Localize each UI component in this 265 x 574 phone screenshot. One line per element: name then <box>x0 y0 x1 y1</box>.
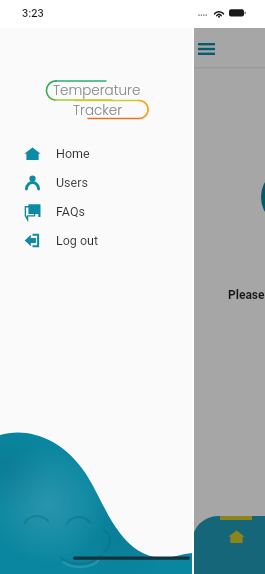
staticText: Temperature <box>53 81 141 100</box>
staticText: Users <box>56 175 88 190</box>
staticText: 3:23 <box>22 7 44 20</box>
staticText: FAQs <box>56 204 86 219</box>
staticText: Home <box>56 146 90 161</box>
button[interactable]: Home <box>220 516 252 574</box>
staticText: Please tap to start <box>228 288 265 302</box>
button[interactable]: Open navigation menu <box>194 33 222 65</box>
button[interactable]: Home <box>0 139 192 168</box>
button[interactable]: FAQs <box>0 197 192 226</box>
staticText: Log out <box>56 233 99 248</box>
button[interactable]: Users <box>0 168 192 197</box>
staticText: Tracker <box>73 101 123 120</box>
button[interactable]: Log out <box>0 226 192 255</box>
